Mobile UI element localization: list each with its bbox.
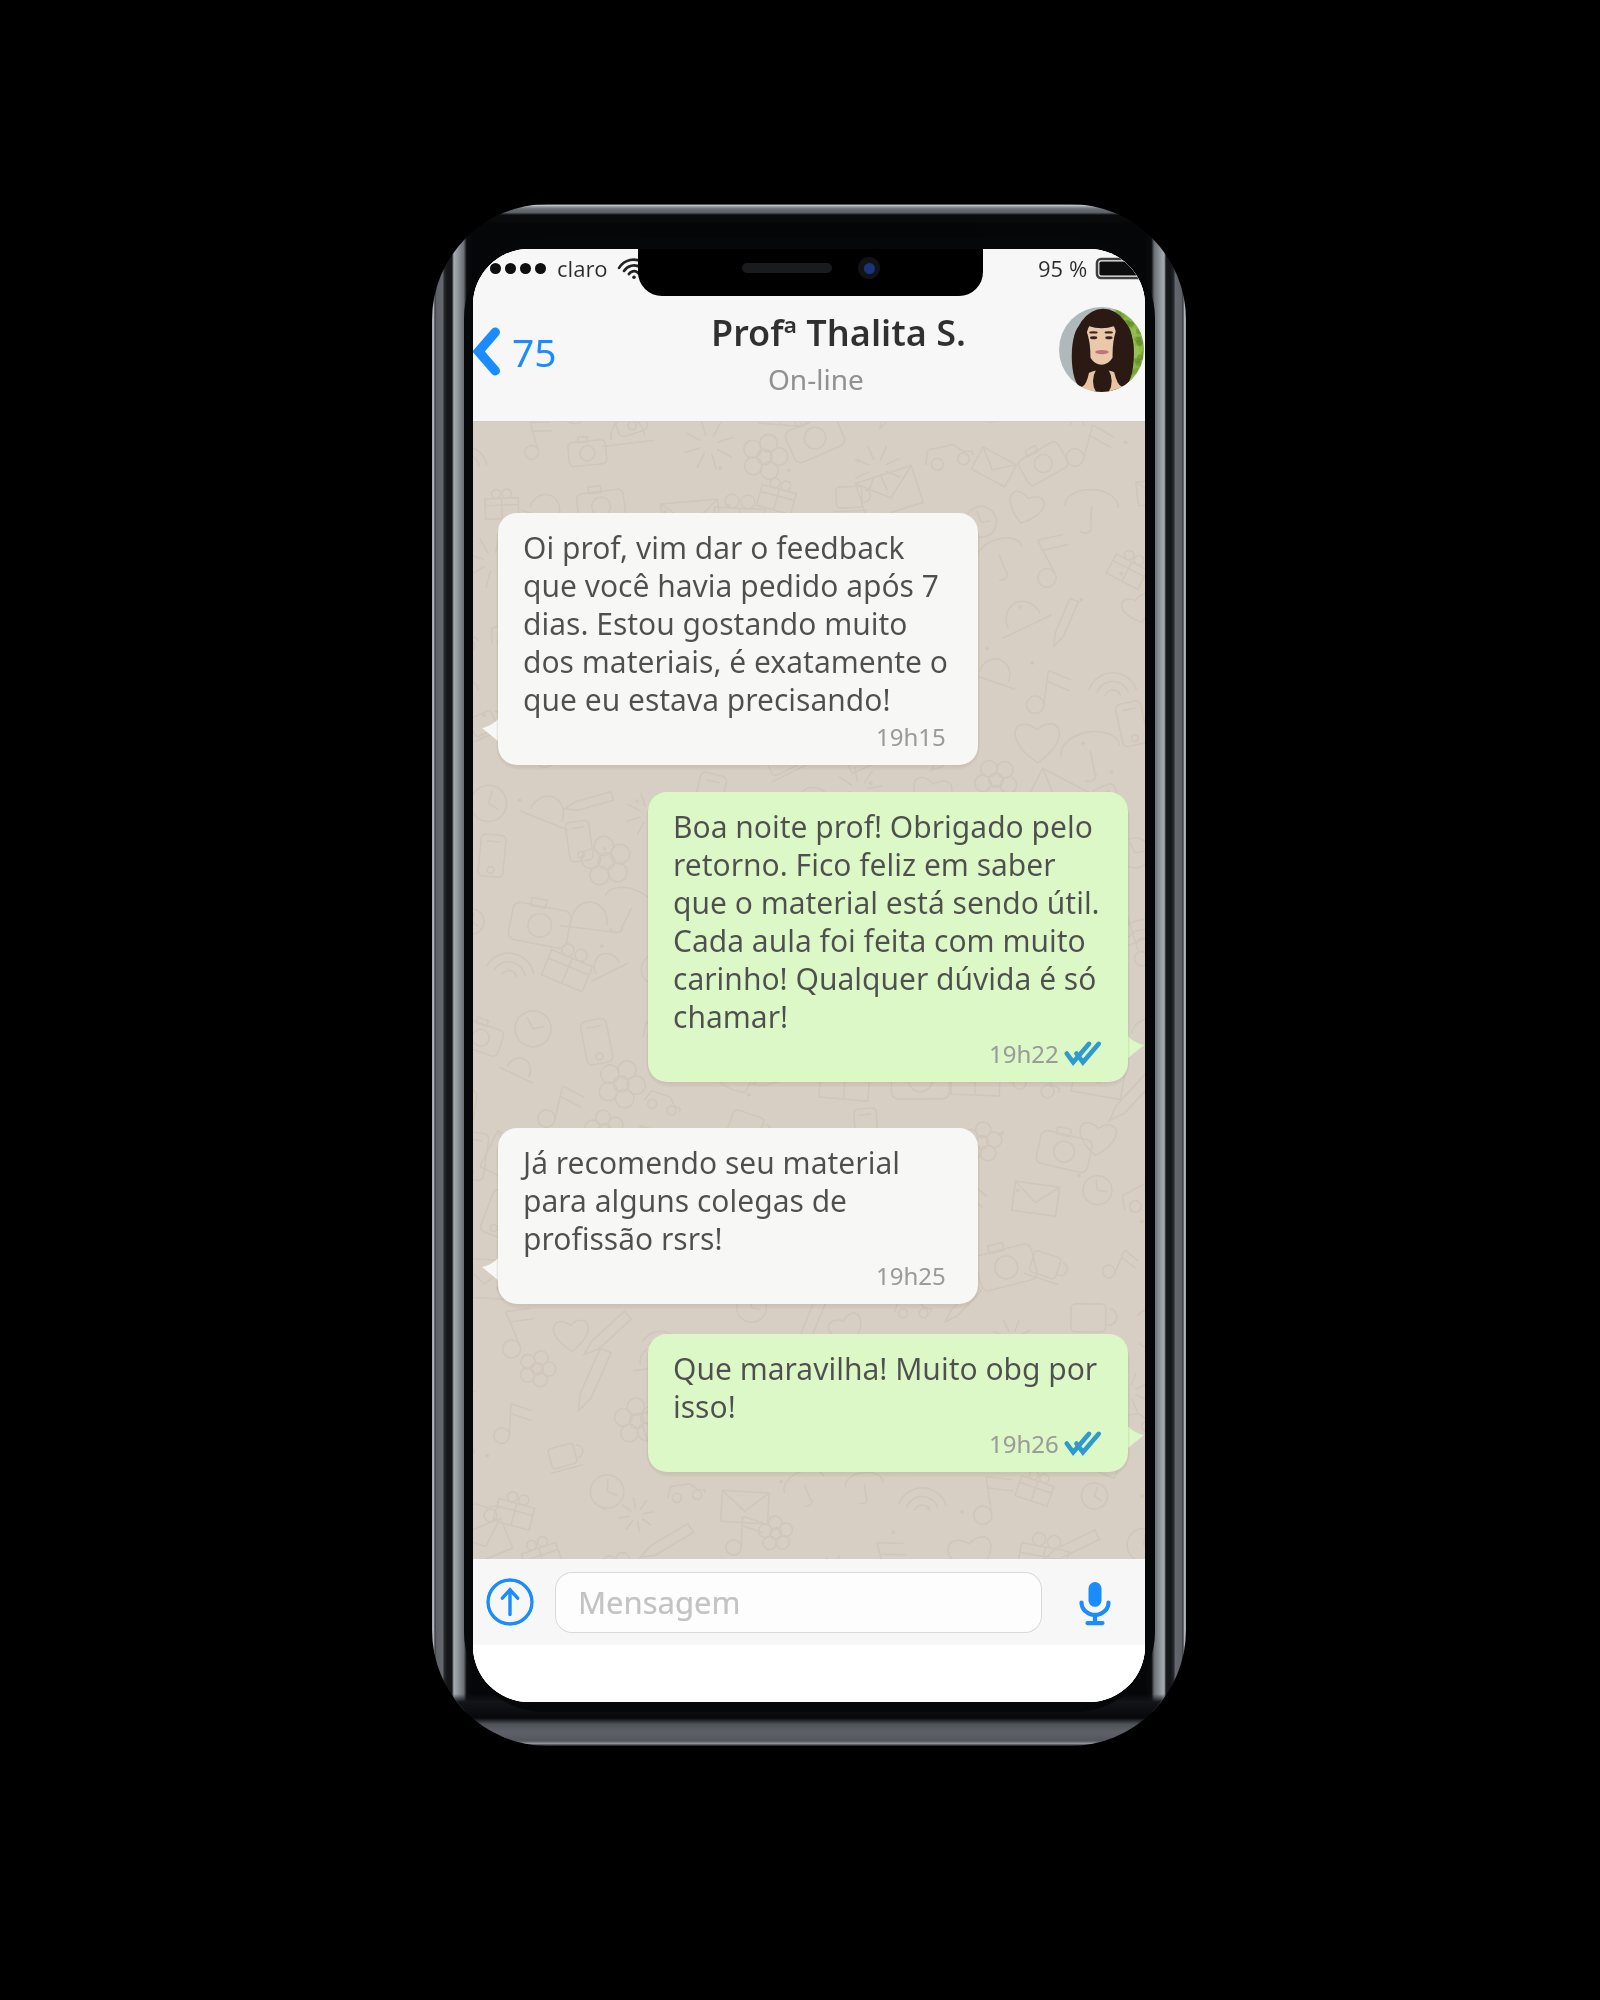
button[interactable]: 75 [473,315,571,388]
staticText: On-line [768,360,864,398]
button[interactable]: Voice message [1070,1575,1120,1629]
staticText: Já recomendo seu material para alguns co… [523,1142,952,1259]
button[interactable]: Oi prof, vim dar o feedback que você hav… [498,513,978,765]
staticText: 19h15 [876,720,946,753]
staticText: 19h22 [989,1037,1059,1070]
button[interactable]: Que maravilha! Muito obg por isso! [648,1334,1128,1472]
button[interactable]: Mensagem [555,1572,1042,1633]
button[interactable]: Já recomendo seu material para alguns co… [498,1128,978,1304]
staticText: 75 [512,325,557,378]
button[interactable]: Attach [486,1578,534,1626]
button[interactable]: Boa noite prof! Obrigado pelo retorno. F… [648,792,1128,1082]
staticText: Boa noite prof! Obrigado pelo retorno. F… [673,806,1102,1037]
staticText: 19h25 [876,1259,946,1292]
staticText: Que maravilha! Muito obg por isso! [673,1348,1102,1427]
staticText: Oi prof, vim dar o feedback que você hav… [523,527,952,720]
staticText: claro [557,253,608,283]
button[interactable]: Profile photo [1059,307,1144,392]
staticText: 19h26 [989,1427,1059,1460]
staticText: Mensagem [578,1581,741,1623]
staticText: Profª Thalita S. [711,308,967,357]
staticText: 95 % [1038,253,1088,283]
